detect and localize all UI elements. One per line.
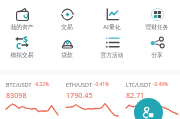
staticText: 贷款 (45, 51, 89, 58)
button[interactable]: 分享 (135, 33, 179, 60)
staticText: BTC/USDT (6, 81, 32, 88)
button[interactable]: 贷款 (45, 33, 89, 60)
staticText: 理财任务 (135, 23, 179, 30)
button[interactable]: 交易 (45, 5, 89, 32)
button[interactable]: 官方活动 (90, 33, 134, 60)
button[interactable]: Customer service (134, 98, 163, 119)
staticText: 交易 (45, 23, 89, 30)
staticText: AI量化 (90, 23, 134, 31)
staticText: 83098 (6, 90, 27, 100)
staticText: 我的资产 (0, 23, 44, 30)
staticText: C (16, 40, 22, 52)
button[interactable]: 理财任务 (135, 5, 179, 32)
staticText: 模拟交易 (0, 51, 44, 58)
staticText: 82.71 (126, 90, 145, 100)
button[interactable]: 我的资产 (0, 5, 44, 32)
staticText: 官方活动 (90, 51, 134, 58)
button[interactable]: $ (0, 33, 44, 60)
button[interactable]: AI量化 (90, 5, 134, 32)
staticText: 1790.45 (66, 90, 93, 100)
staticText: -0.49% (153, 81, 169, 88)
staticText: ETH/USDT (66, 81, 92, 88)
staticText: $ (23, 34, 28, 46)
staticText: LTC/USDT (126, 81, 151, 88)
button[interactable]: LTC/USDT (120, 75, 180, 119)
staticText: -0.41% (94, 81, 110, 88)
staticText: -9.22% (34, 81, 50, 88)
staticText: 分享 (135, 51, 179, 58)
button[interactable]: ETH/USDT (60, 75, 120, 119)
button[interactable]: BTC/USDT (0, 75, 60, 119)
